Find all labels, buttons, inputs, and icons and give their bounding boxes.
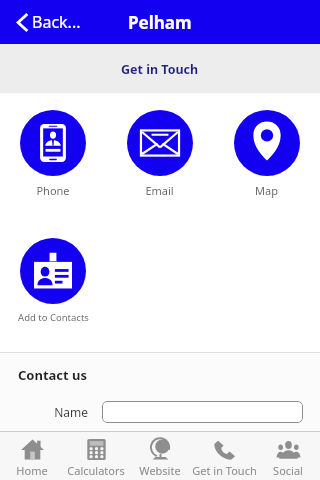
- staticText: Calculators: [67, 463, 125, 475]
- button[interactable]: Calculators: [64, 439, 128, 475]
- button[interactable]: Get in Touch: [192, 439, 256, 475]
- staticText: Get in Touch: [121, 61, 199, 78]
- staticText: Phone: [36, 183, 70, 198]
- button[interactable]: Back...: [17, 11, 81, 33]
- staticText: Website: [139, 463, 181, 475]
- staticText: Pelham: [128, 11, 192, 34]
- staticText: Name: [0, 404, 88, 420]
- button[interactable]: Email: [106, 110, 213, 198]
- staticText: Home: [16, 463, 48, 475]
- button[interactable]: [102, 401, 303, 423]
- button[interactable]: Website: [128, 439, 192, 475]
- button[interactable]: Home: [0, 439, 64, 475]
- staticText: Add to Contacts: [18, 311, 89, 324]
- staticText: Get in Touch: [192, 463, 256, 475]
- button[interactable]: Social: [256, 439, 320, 475]
- staticText: Back...: [32, 11, 81, 33]
- staticText: Map: [255, 183, 278, 198]
- button[interactable]: Phone: [0, 110, 106, 198]
- staticText: Email: [145, 183, 174, 198]
- staticText: Contact us: [18, 366, 88, 384]
- button[interactable]: Map: [213, 110, 320, 198]
- staticText: Social: [273, 463, 303, 475]
- button[interactable]: Add to Contacts: [0, 238, 106, 324]
